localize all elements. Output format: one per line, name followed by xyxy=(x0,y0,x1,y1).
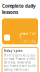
button[interactable]: Lesson 1 of 5 xyxy=(2,18,38,44)
staticText: 5 min a day xyxy=(20,40,35,43)
staticText: Today's plan xyxy=(4,49,23,53)
staticText: Complete daily lessons xyxy=(2,3,36,15)
staticText: Lesson 1 of 5 xyxy=(19,32,35,39)
staticText: Short lessons keep you on track. Practis… xyxy=(4,54,36,72)
